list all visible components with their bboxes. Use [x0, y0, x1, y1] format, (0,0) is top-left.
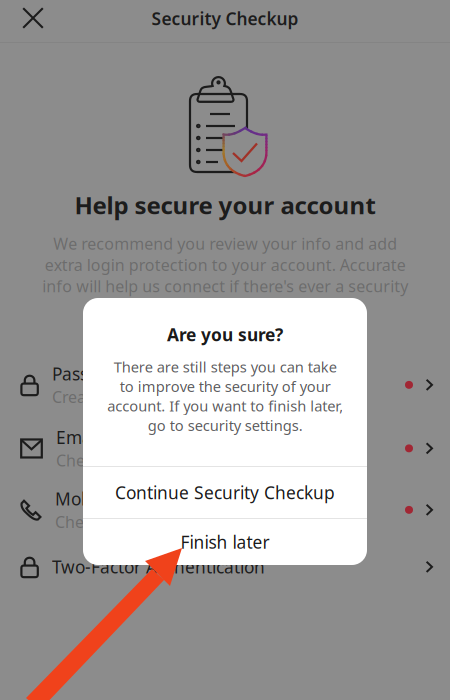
button[interactable]: Close [0, 1, 76, 41]
staticText: Mobile Number [55, 487, 183, 510]
staticText: Help secure your account [74, 189, 375, 221]
button[interactable]: Two-Factor Authentication [0, 540, 450, 594]
staticText: There are still steps you can take to im… [107, 357, 343, 435]
staticText: Are you sure? [167, 323, 283, 346]
staticText: We recommend you review your info and ad… [42, 233, 408, 318]
staticText: Continue Security Checkup [115, 481, 335, 504]
staticText: Two-Factor Authentication [52, 555, 265, 578]
button[interactable]: Email [0, 417, 450, 480]
staticText: Email [56, 426, 100, 449]
staticText: Check your email address [56, 450, 250, 471]
button[interactable]: Finish later [83, 519, 367, 565]
staticText: Password [52, 362, 130, 385]
button[interactable]: Password [0, 353, 450, 417]
button[interactable]: Continue Security Checkup [83, 467, 367, 518]
button[interactable]: Mobile Number [0, 480, 450, 540]
staticText: Finish later [180, 530, 269, 553]
staticText: Check your mobile number [55, 511, 261, 532]
staticText: Security Checkup [151, 7, 298, 30]
staticText: Create a strong password [52, 386, 246, 407]
